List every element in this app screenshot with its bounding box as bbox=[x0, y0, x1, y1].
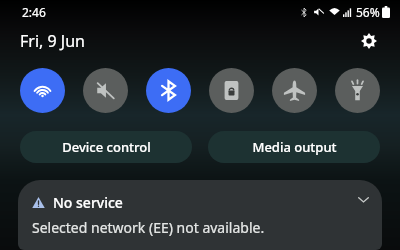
button[interactable]: Settings bbox=[356, 28, 382, 54]
button[interactable]: Flashlight bbox=[335, 68, 380, 113]
button[interactable]: Airplane mode bbox=[272, 68, 317, 113]
button[interactable]: Device lock bbox=[209, 68, 254, 113]
staticText: No service bbox=[53, 193, 123, 212]
staticText: 2:46 bbox=[22, 4, 46, 20]
button[interactable]: Device control bbox=[20, 131, 192, 163]
button[interactable]: No service bbox=[18, 180, 382, 250]
button[interactable]: Mute bbox=[83, 68, 128, 113]
button[interactable]: Bluetooth bbox=[146, 68, 191, 113]
button[interactable]: Media output bbox=[208, 131, 380, 163]
staticText: 56% bbox=[356, 4, 380, 20]
staticText: Selected network (EE) not available. bbox=[32, 218, 265, 237]
staticText: Fri, 9 Jun bbox=[20, 30, 85, 52]
staticText: Media output bbox=[252, 138, 337, 156]
staticText: Device control bbox=[62, 138, 151, 156]
button[interactable]: Wi-Fi bbox=[20, 68, 65, 113]
button[interactable]: Expand notification bbox=[352, 188, 374, 210]
